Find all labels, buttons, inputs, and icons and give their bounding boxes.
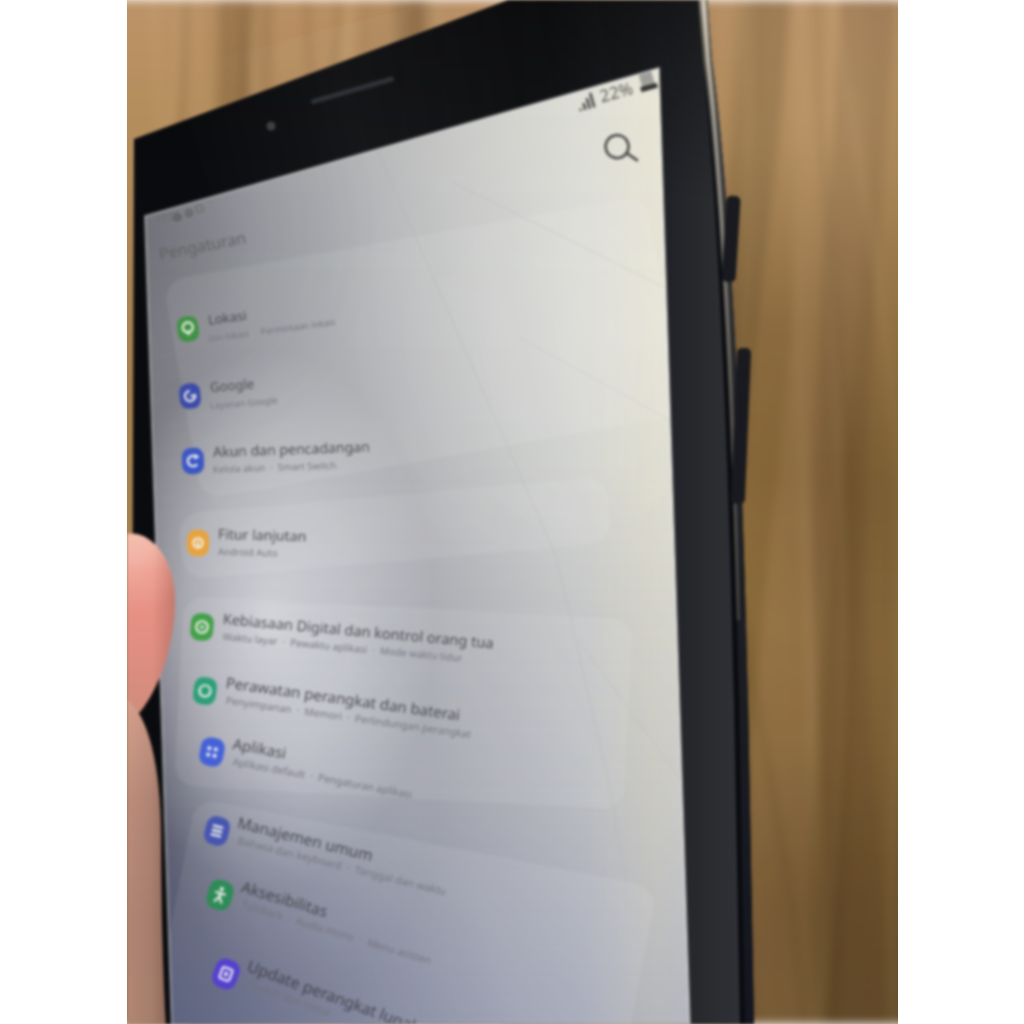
staticText: Aksesibilitas TalkBack · Audio mono · Me… xyxy=(196,868,221,869)
button[interactable]: Perawatan perangkat dan baterai Penyimpa… xyxy=(181,664,651,720)
staticText: Aplikasi xyxy=(231,733,289,763)
staticText: Manajemen umum Bahasa dan keyboard · Tan… xyxy=(193,804,223,805)
staticText: Aplikasi default · Pengaturan aplikasi xyxy=(232,754,413,801)
staticText: Lokasi xyxy=(207,306,248,329)
staticText: Izin lokasi · Permintaan lokasi xyxy=(207,315,337,344)
staticText: Pengaturan xyxy=(157,226,248,265)
staticText: Lokasi Izin lokasi · Permintaan lokasi xyxy=(164,302,182,303)
staticText: Unduh dan instal xyxy=(245,975,333,1020)
staticText: Aplikasi Aplikasi default · Pengaturan a… xyxy=(188,725,210,726)
staticText: Fitur lanjutan xyxy=(218,524,307,545)
staticText: Android Auto xyxy=(218,545,278,560)
button[interactable]: Lokasi Izin lokasi · Permintaan lokasi xyxy=(164,302,634,358)
staticText: TalkBack · Audio mono · Menu asisten xyxy=(240,897,434,967)
staticText: 22% xyxy=(597,76,636,108)
button[interactable]: Search settings xyxy=(596,124,646,174)
staticText: Manajemen umum xyxy=(235,811,375,865)
button[interactable]: Kebiasaan Digital dan kontrol orang tua … xyxy=(178,600,648,656)
staticText: Kebiasaan Digital dan kontrol orang tua … xyxy=(178,600,222,601)
button[interactable]: Akun dan pencadangan Kelola akun · Smart… xyxy=(169,434,639,490)
staticText: Waktu layar · Pewaktu aplikasi · Mode wa… xyxy=(222,629,464,664)
button[interactable]: Aplikasi Aplikasi default · Pengaturan a… xyxy=(188,725,658,781)
staticText: Kebiasaan Digital dan kontrol orang tua xyxy=(222,608,495,652)
button[interactable]: Pengaturan xyxy=(150,228,360,272)
button[interactable]: Update perangkat lunak Unduh dan instal xyxy=(202,947,672,1003)
staticText: Update perangkat lunak xyxy=(244,955,424,1024)
staticText: Akun dan pencadangan Kelola akun · Smart… xyxy=(169,434,194,435)
staticText: Perawatan perangkat dan baterai xyxy=(225,672,462,724)
staticText: Akun dan pencadangan xyxy=(213,437,370,461)
staticText: Google xyxy=(209,374,256,396)
button[interactable]: Google Layanan Google xyxy=(166,369,636,425)
button[interactable]: Aksesibilitas TalkBack · Audio mono · Me… xyxy=(196,868,666,924)
button[interactable]: Fitur lanjutan Android Auto xyxy=(174,516,644,572)
staticText: Layanan Google xyxy=(209,393,278,411)
staticText: Penyimpanan · Memori · Perlindungan pera… xyxy=(225,693,473,741)
staticText: Kelola akun · Smart Switch xyxy=(213,459,337,476)
staticText: Aksesibilitas xyxy=(239,875,331,921)
button[interactable]: Manajemen umum Bahasa dan keyboard · Tan… xyxy=(193,804,663,860)
staticText: 17:28 xyxy=(155,208,182,226)
staticText: Bahasa dan keyboard · Tanggal dan waktu xyxy=(236,833,448,898)
staticText: Perawatan perangkat dan baterai Penyimpa… xyxy=(181,664,222,665)
